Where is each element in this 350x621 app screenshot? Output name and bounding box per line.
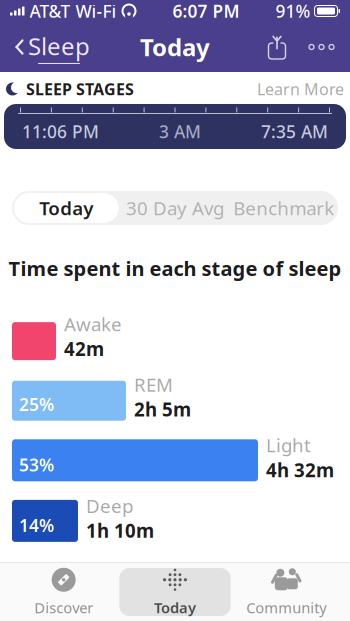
staticText: Light <box>266 433 311 457</box>
staticText: 42m <box>64 336 104 361</box>
staticText: 53% <box>19 453 54 476</box>
staticText: Benchmark <box>233 196 334 220</box>
button[interactable]: Learn More <box>257 74 344 104</box>
button[interactable]: Discover <box>8 566 119 618</box>
staticText: 7:35 AM <box>261 120 328 143</box>
button[interactable]: Share <box>257 28 297 66</box>
button[interactable]: 30 Day Avg <box>121 191 229 225</box>
staticText: SLEEP STAGES <box>26 78 134 100</box>
staticText: Awake <box>64 312 122 336</box>
staticText: Discover <box>34 598 93 617</box>
staticText: 11:06 PM <box>22 120 99 143</box>
staticText: 1h 10m <box>86 518 154 543</box>
staticText: 91% <box>275 0 310 22</box>
button[interactable]: Today <box>119 568 231 616</box>
staticText: 14% <box>19 514 54 537</box>
staticText: Community <box>246 598 326 617</box>
staticText: Learn More <box>257 78 344 100</box>
button[interactable]: More options <box>297 30 346 63</box>
button[interactable]: Sleep <box>4 24 100 70</box>
staticText: Deep <box>86 493 133 518</box>
staticText: 25% <box>19 393 54 416</box>
staticText: 2h 5m <box>134 397 191 422</box>
button[interactable]: Community <box>231 566 342 618</box>
staticText: Today <box>154 598 196 617</box>
staticText: REM <box>134 372 173 397</box>
staticText: Time spent in each stage of sleep <box>8 255 341 282</box>
staticText: Sleep <box>28 30 90 62</box>
staticText: AT&T Wi-Fi <box>29 0 116 22</box>
button[interactable]: Benchmark <box>229 191 338 225</box>
staticText: Today <box>39 196 93 220</box>
staticText: 4h 32m <box>266 457 334 482</box>
staticText: 30 Day Avg <box>126 196 224 220</box>
staticText: Today <box>140 31 210 63</box>
button[interactable]: Today <box>12 191 121 225</box>
staticText: 6:07 PM <box>172 0 239 22</box>
staticText: 3 AM <box>159 120 201 143</box>
